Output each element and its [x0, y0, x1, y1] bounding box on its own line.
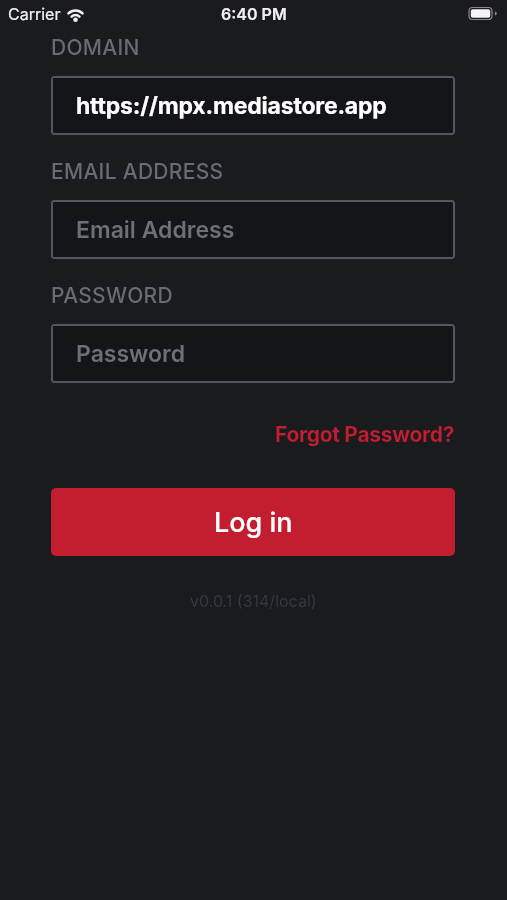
staticText: EMAIL ADDRESS	[51, 159, 224, 184]
staticText: DOMAIN	[51, 35, 140, 60]
staticText: 6:40 PM	[221, 4, 287, 23]
button[interactable]: Forgot Password?	[275, 422, 455, 447]
staticText: Forgot Password?	[275, 422, 455, 447]
button[interactable]: Email Address	[51, 200, 455, 259]
button[interactable]: Log in	[51, 488, 455, 556]
staticText: Password	[76, 340, 186, 368]
staticText: Log in	[214, 506, 293, 539]
button[interactable]: Password	[51, 324, 455, 383]
staticText: PASSWORD	[51, 283, 173, 308]
staticText: v0.0.1 (314/local)	[190, 591, 317, 610]
staticText: Email Address	[76, 216, 235, 244]
staticText: https://mpx.mediastore.app	[76, 92, 387, 120]
button[interactable]: https://mpx.mediastore.app	[51, 76, 455, 135]
staticText: Carrier	[8, 4, 61, 23]
